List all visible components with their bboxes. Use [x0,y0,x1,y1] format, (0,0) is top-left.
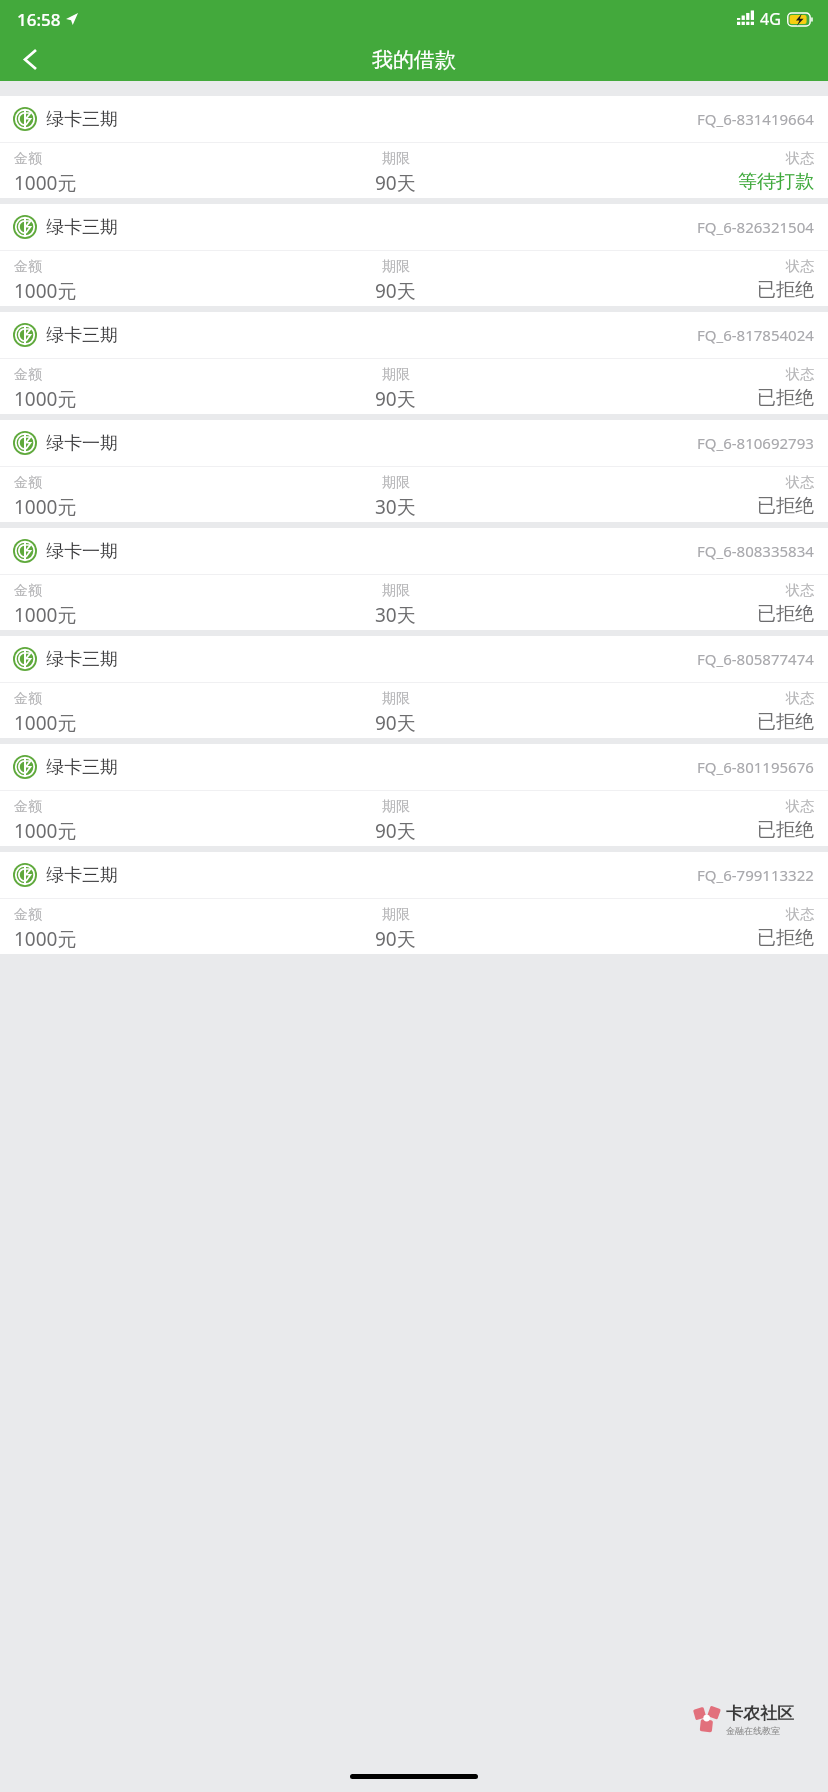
button[interactable]: Back [0,38,60,81]
staticText: 状态 [786,150,814,168]
staticText: FQ_6-799113322 [697,865,814,885]
staticText: 期限 [382,474,410,492]
button[interactable]: 绿卡三期 [0,96,828,198]
staticText: 90天 [375,386,416,412]
staticText: 1000元 [14,602,77,628]
staticText: 绿卡一期 [46,432,118,455]
button[interactable]: 绿卡一期 [0,528,828,630]
staticText: 1000元 [14,278,77,304]
staticText: 已拒绝 [757,494,814,518]
staticText: 期限 [382,582,410,600]
staticText: 绿卡一期 [46,540,118,563]
staticText: 1000元 [14,386,77,412]
staticText: 30天 [375,602,416,628]
button[interactable]: 绿卡三期 [0,852,828,954]
button[interactable]: 绿卡一期 [0,420,828,522]
staticText: 期限 [382,366,410,384]
staticText: 已拒绝 [757,278,814,302]
staticText: 1000元 [14,494,77,520]
staticText: 已拒绝 [757,818,814,842]
staticText: FQ_6-805877474 [697,649,814,669]
staticText: 金额 [14,582,42,600]
staticText: 绿卡三期 [46,864,118,887]
staticText: 金额 [14,690,42,708]
staticText: 16:58 [17,8,61,31]
staticText: 30天 [375,494,416,520]
staticText: FQ_6-801195676 [697,757,814,777]
staticText: 期限 [382,906,410,924]
staticText: 金融在线教室 [726,1725,780,1736]
staticText: 90天 [375,278,416,304]
staticText: 状态 [786,690,814,708]
staticText: 1000元 [14,818,77,844]
staticText: 已拒绝 [757,710,814,734]
staticText: 90天 [375,170,416,196]
staticText: 状态 [786,474,814,492]
staticText: 金额 [14,150,42,168]
staticText: 我的借款 [372,47,456,73]
staticText: FQ_6-831419664 [697,109,814,129]
button[interactable]: 绿卡三期 [0,312,828,414]
staticText: 金额 [14,258,42,276]
staticText: 绿卡三期 [46,216,118,239]
staticText: 绿卡三期 [46,648,118,671]
staticText: 已拒绝 [757,386,814,410]
staticText: 1000元 [14,926,77,952]
staticText: 金额 [14,366,42,384]
staticText: 已拒绝 [757,926,814,950]
button[interactable]: 绿卡三期 [0,204,828,306]
staticText: 1000元 [14,170,77,196]
staticText: 金额 [14,906,42,924]
staticText: 金额 [14,474,42,492]
staticText: FQ_6-817854024 [697,325,814,345]
staticText: 期限 [382,690,410,708]
staticText: 状态 [786,906,814,924]
staticText: 期限 [382,258,410,276]
staticText: 绿卡三期 [46,324,118,347]
button[interactable]: 绿卡三期 [0,744,828,846]
staticText: 等待打款 [738,170,814,194]
staticText: 期限 [382,150,410,168]
staticText: FQ_6-826321504 [697,217,814,237]
staticText: 状态 [786,582,814,600]
staticText: 已拒绝 [757,602,814,626]
staticText: 90天 [375,926,416,952]
staticText: 90天 [375,818,416,844]
staticText: 期限 [382,798,410,816]
button[interactable]: 绿卡三期 [0,636,828,738]
staticText: 4G [760,8,781,30]
staticText: 状态 [786,798,814,816]
staticText: 1000元 [14,710,77,736]
staticText: 卡农社区 [726,1703,794,1724]
staticText: 90天 [375,710,416,736]
staticText: 金额 [14,798,42,816]
button[interactable]: 卡农社区 [691,1703,794,1736]
staticText: 绿卡三期 [46,108,118,131]
staticText: FQ_6-810692793 [697,433,814,453]
staticText: FQ_6-808335834 [697,541,814,561]
staticText: 状态 [786,366,814,384]
staticText: 绿卡三期 [46,756,118,779]
staticText: 状态 [786,258,814,276]
